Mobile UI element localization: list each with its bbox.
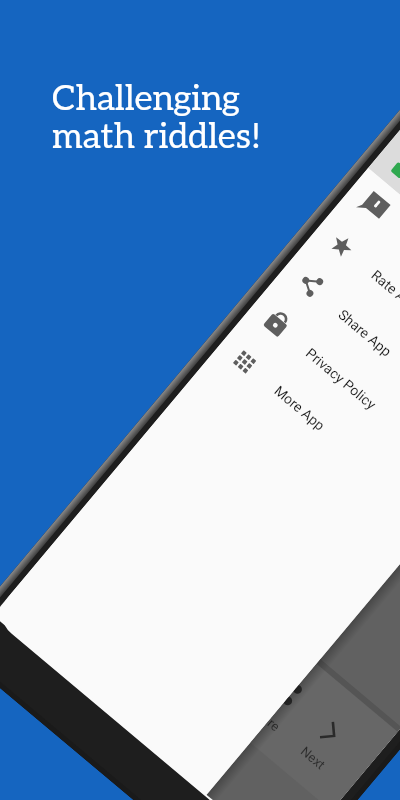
- staticText: Challenging math riddles!: [52, 78, 262, 158]
